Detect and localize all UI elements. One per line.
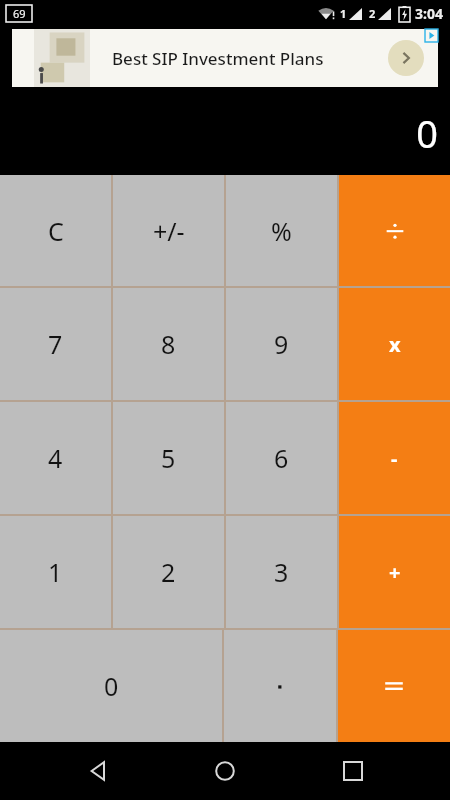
staticText: +/-: [153, 214, 185, 248]
staticText: 2: [161, 555, 176, 589]
staticText: 0: [416, 107, 438, 159]
staticText: x: [389, 331, 401, 358]
button[interactable]: -: [339, 402, 450, 514]
staticText: Best SIP Investment Plans: [112, 47, 380, 70]
staticText: C: [48, 214, 64, 248]
button[interactable]: Back: [68, 742, 128, 800]
staticText: 1: [48, 555, 63, 589]
button[interactable]: Advertisement: [12, 29, 438, 87]
staticText: 3: [274, 555, 289, 589]
button[interactable]: Recent apps: [323, 742, 383, 800]
staticText: %: [271, 214, 292, 248]
button[interactable]: 1: [0, 516, 111, 628]
button[interactable]: +/-: [113, 175, 224, 286]
staticText: 4: [48, 441, 63, 475]
button[interactable]: 0: [0, 630, 222, 742]
staticText: 5: [161, 441, 176, 475]
staticText: 1: [340, 6, 347, 21]
staticText: 7: [48, 327, 63, 361]
button[interactable]: 3: [226, 516, 337, 628]
staticText: 3:04: [415, 4, 443, 23]
button[interactable]: ÷: [339, 175, 450, 286]
button[interactable]: 7: [0, 288, 111, 400]
button[interactable]: Home: [195, 742, 255, 800]
button[interactable]: 8: [113, 288, 224, 400]
button[interactable]: 2: [113, 516, 224, 628]
staticText: +: [389, 559, 401, 586]
button[interactable]: %: [226, 175, 337, 286]
button[interactable]: .: [224, 630, 336, 742]
button[interactable]: 9: [226, 288, 337, 400]
staticText: 6: [274, 441, 289, 475]
button[interactable]: =: [338, 630, 450, 742]
button[interactable]: C: [0, 175, 111, 286]
button[interactable]: 6: [226, 402, 337, 514]
button[interactable]: x: [339, 288, 450, 400]
button[interactable]: +: [339, 516, 450, 628]
staticText: 0: [104, 669, 119, 703]
staticText: 9: [274, 327, 289, 361]
button[interactable]: 5: [113, 402, 224, 514]
staticText: 8: [161, 327, 176, 361]
staticText: -: [391, 445, 398, 472]
button[interactable]: 4: [0, 402, 111, 514]
staticText: 2: [369, 6, 376, 21]
staticText: 69: [13, 6, 26, 21]
